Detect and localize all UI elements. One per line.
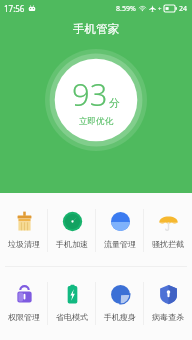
staticText: 病毒查杀 bbox=[152, 312, 184, 322]
button[interactable]: 骚扰拦截 bbox=[144, 194, 192, 266]
staticText: 权限管理 bbox=[8, 312, 40, 322]
button[interactable]: 病毒查杀 bbox=[144, 267, 192, 339]
staticText: 手机瘦身 bbox=[104, 312, 136, 322]
staticText: 分 bbox=[109, 96, 120, 110]
button[interactable]: 立即优化 93分 bbox=[45, 49, 147, 151]
staticText: 骚扰拦截 bbox=[152, 239, 184, 249]
button[interactable]: 省电模式 bbox=[48, 267, 96, 339]
button[interactable]: 手机瘦身 bbox=[96, 267, 144, 339]
staticText: 垃圾清理 bbox=[8, 239, 40, 249]
staticText: 手机管家 bbox=[73, 22, 119, 36]
staticText: 93 bbox=[72, 73, 108, 115]
staticText: 24 bbox=[179, 4, 188, 14]
staticText: + bbox=[158, 5, 162, 13]
button[interactable]: 权限管理 bbox=[0, 267, 48, 339]
staticText: 17:56 bbox=[4, 3, 25, 14]
staticText: 手机加速 bbox=[56, 239, 88, 249]
staticText: 流量管理 bbox=[104, 239, 136, 249]
staticText: 立即优化 bbox=[79, 116, 113, 127]
button[interactable]: 垃圾清理 bbox=[0, 194, 48, 266]
staticText: 8.59% bbox=[116, 4, 136, 14]
button[interactable]: 手机加速 bbox=[48, 194, 96, 266]
staticText: 省电模式 bbox=[56, 312, 88, 322]
button[interactable]: 流量管理 bbox=[96, 194, 144, 266]
